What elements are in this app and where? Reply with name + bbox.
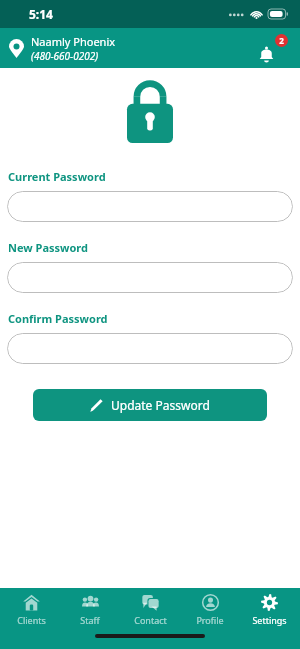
staticText: Current Password [8,169,106,184]
button[interactable]: Settings [240,594,298,626]
other: Location [9,39,24,58]
staticText: 2 [279,35,284,46]
button[interactable]: Notifications [258,33,288,63]
staticText: Confirm Password [8,311,108,326]
staticText: Contact [134,614,167,626]
staticText: Clients [17,614,46,626]
button[interactable]: Contact [121,594,179,626]
staticText: Update Password [111,397,210,413]
staticText: 5:14 [29,6,53,22]
button[interactable]: Clients [2,594,60,626]
staticText: Naamly Phoenix [31,34,116,49]
button[interactable]: Update Password [33,389,267,421]
button[interactable]: New Password [7,262,293,293]
button[interactable]: Current Password [7,191,293,222]
button[interactable]: Location [9,34,116,63]
button[interactable]: Confirm Password [7,333,293,364]
staticText: New Password [8,240,88,255]
staticText: Profile [196,614,224,626]
staticText: Settings [252,614,287,626]
button[interactable]: Staff [61,594,119,626]
staticText: Staff [80,614,100,626]
staticText: (480-660-0202) [31,49,99,63]
button[interactable]: Profile [181,594,239,626]
